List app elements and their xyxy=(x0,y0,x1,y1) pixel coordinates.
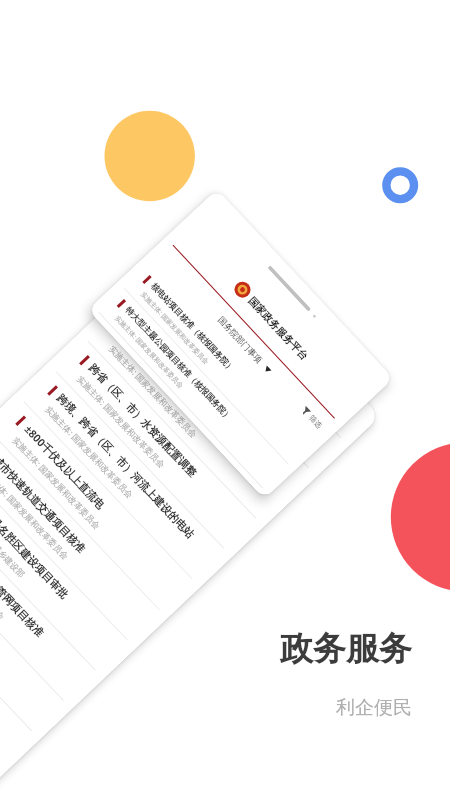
button[interactable]: 跨省（区、市）水资源配置调整 xyxy=(48,333,264,557)
button[interactable]: 在跨界河流、跨省（区、市）河流上建设的库容10亿立方米及以上或者涉及移民1万人及… xyxy=(80,283,317,527)
staticText: 跨境、跨省（区、市）河流上建设的电站 xyxy=(53,392,197,542)
staticText: 筛选 xyxy=(307,413,324,430)
button[interactable]: 特大型主题公园项目核准（核报国务院） xyxy=(133,252,349,476)
staticText: 国务院部门事项 xyxy=(215,314,265,367)
staticText: 实施主体: 国家发展和改革委员会 xyxy=(106,343,200,440)
staticText: 利企便民 xyxy=(336,696,412,720)
staticText: ±800千伏及以上直流电 xyxy=(21,422,108,513)
button[interactable]: 跨境、跨省（区、市）河流上建设的电站 xyxy=(16,363,232,587)
staticText: 特大型主题公园项目核准（核报国务院） xyxy=(170,281,314,431)
button[interactable]: 城市快速轨道交通项目核准 xyxy=(0,424,167,648)
staticText: 实施主体: 国家发展和改革委员会 xyxy=(0,465,71,562)
button[interactable]: Filter xyxy=(300,405,334,440)
button[interactable]: 在跨界河流、跨省（区、市）河流上建设的库容10亿立方米及以上或者涉及移民1万人及… xyxy=(88,306,269,499)
button[interactable]: 稀土、铁矿、有色金属开采项目核准 xyxy=(0,545,40,769)
staticText: 实施主体: 国家发展和改革委员会 xyxy=(191,262,285,360)
button[interactable]: 国家级风景名胜区建设项目审批 xyxy=(0,455,135,679)
button[interactable]: ±800千伏及以上直流电 xyxy=(0,393,200,618)
button[interactable]: 跨省（区、市）油气管网项目核准 xyxy=(0,485,103,709)
button[interactable]: 核电站项目核准（核报国务院） xyxy=(165,222,380,446)
staticText: 城市快速轨道交通项目核准 xyxy=(0,453,88,556)
staticText: 政务服务 xyxy=(280,628,412,670)
staticText: 国家级风景名胜区建设项目审批 xyxy=(0,483,71,603)
button[interactable]: 国家储备林建设项目审批 xyxy=(0,576,8,800)
staticText: 实施主体: 国家发展和改革委员会 xyxy=(0,525,7,623)
button[interactable]: 特大型主题公园项目核准（核报国务院） xyxy=(93,282,294,494)
staticText: 跨省（区、市）油气管网项目核准 xyxy=(0,514,47,641)
staticText: 特大型主题公园项目核准（核报国务院） xyxy=(123,305,234,424)
staticText: 在跨界河流、跨省（区、市）河流上建设的库容10亿立方米及以上或者涉及移民1万人及… xyxy=(117,311,301,502)
button[interactable]: 核电站项目核准（核报国务院） xyxy=(118,258,320,470)
button[interactable]: 国务院部门事项 xyxy=(215,314,274,376)
staticText: 核电站项目核准（核报国务院） xyxy=(148,281,237,375)
staticText: 实施主体: 国家发展和改革委员会 xyxy=(159,293,253,390)
staticText: 跨省（区、市）水资源配置调整 xyxy=(85,361,199,481)
staticText: 实施主体: 国家发展和改革委员会 xyxy=(113,314,185,390)
staticText: 实施主体: 国家发展和改革委员会 xyxy=(10,434,103,532)
other: Filter xyxy=(300,406,311,417)
staticText: 核电站项目核准（核报国务院） xyxy=(202,251,316,370)
staticText: 实施主体: 国家发展和改革委员会 xyxy=(42,403,136,501)
staticText: 实施主体: 国家发展和改革委员会 xyxy=(139,290,211,366)
staticText: 实施主体: 住房和城乡建设部 xyxy=(0,495,28,580)
staticText: 实施主体: 国家发展和改革委员会 xyxy=(74,373,168,471)
staticText: 国家政务服务平台 xyxy=(246,294,311,363)
button[interactable]: 新建民用运输机场项目核准 xyxy=(0,515,71,739)
